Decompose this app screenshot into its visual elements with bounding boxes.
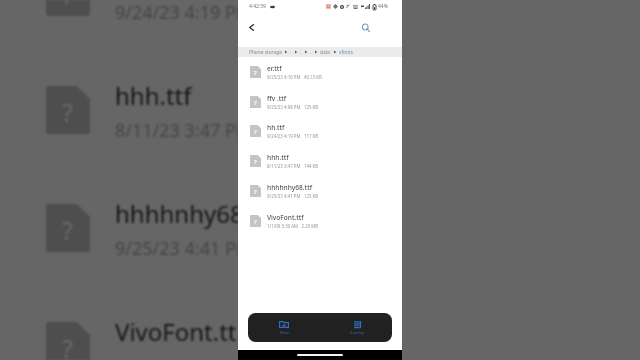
staticText: hhh.ttf xyxy=(115,79,192,112)
staticText: 4:42:59 xyxy=(249,3,266,10)
staticText: ? xyxy=(254,188,257,196)
staticText: 9/24/23 4:19 PM xyxy=(115,0,253,25)
staticText: ? xyxy=(62,331,73,360)
staticText: 9/24/23 4:19 PM 117 KB xyxy=(267,133,319,139)
staticText: ? xyxy=(62,213,73,247)
button[interactable]: Back xyxy=(241,17,261,37)
staticText: hh.ttf xyxy=(267,123,285,132)
staticText: ? xyxy=(254,218,257,226)
button[interactable]: ? xyxy=(238,116,402,146)
staticText: Sort by xyxy=(350,330,364,336)
staticText: 9/25/23 4:41 PM xyxy=(115,236,253,261)
staticText: VivoFont.tt xyxy=(115,315,237,348)
staticText: ? xyxy=(62,95,73,129)
button[interactable]: . xyxy=(300,49,302,56)
staticText: hhhhnhy68 xyxy=(115,197,244,230)
button[interactable]: . xyxy=(290,49,292,56)
button[interactable]: ? xyxy=(238,206,402,236)
staticText: 9/25/23 4:08 PM 125 KB xyxy=(267,104,319,110)
staticText: ? xyxy=(254,99,257,107)
staticText: 9/25/23 4:16 PM 40.13 KB xyxy=(267,74,322,80)
button[interactable]: vfonts xyxy=(339,49,353,56)
staticText: 8/11/23 3:47 PM 144 KB xyxy=(267,163,319,169)
staticText: 44% xyxy=(378,3,388,10)
staticText: ? xyxy=(62,0,73,11)
staticText: 1/1/09 5:30 AM 2.26 MB xyxy=(267,223,319,229)
button[interactable]: Sort by xyxy=(339,318,375,338)
button[interactable]: ? xyxy=(238,146,402,176)
staticText: 1/1/09 5:30 AM xyxy=(115,354,243,360)
staticText: er.ttf xyxy=(267,64,282,73)
button[interactable]: . xyxy=(310,49,312,56)
staticText: hhh.ttf xyxy=(267,153,289,162)
staticText: hhhhnhy68.ttf xyxy=(267,183,313,192)
staticText: New xyxy=(280,330,289,336)
staticText: ? xyxy=(254,128,257,136)
staticText: ffv .ttf xyxy=(267,94,287,103)
staticText: ? xyxy=(254,69,257,77)
button[interactable]: Phone storage xyxy=(249,49,282,56)
button[interactable]: Search xyxy=(356,18,376,38)
button[interactable]: ? xyxy=(238,176,402,206)
staticText: 8/11/23 3:47 PM xyxy=(115,118,253,143)
button[interactable]: data xyxy=(320,49,331,56)
staticText: 9/25/23 4:41 PM 125 KB xyxy=(267,193,319,199)
button[interactable]: New xyxy=(266,318,302,338)
staticText: ? xyxy=(254,158,257,166)
staticText: VivoFont.ttf xyxy=(267,213,304,222)
button[interactable]: ? xyxy=(238,87,402,117)
button[interactable]: ? xyxy=(238,57,402,87)
